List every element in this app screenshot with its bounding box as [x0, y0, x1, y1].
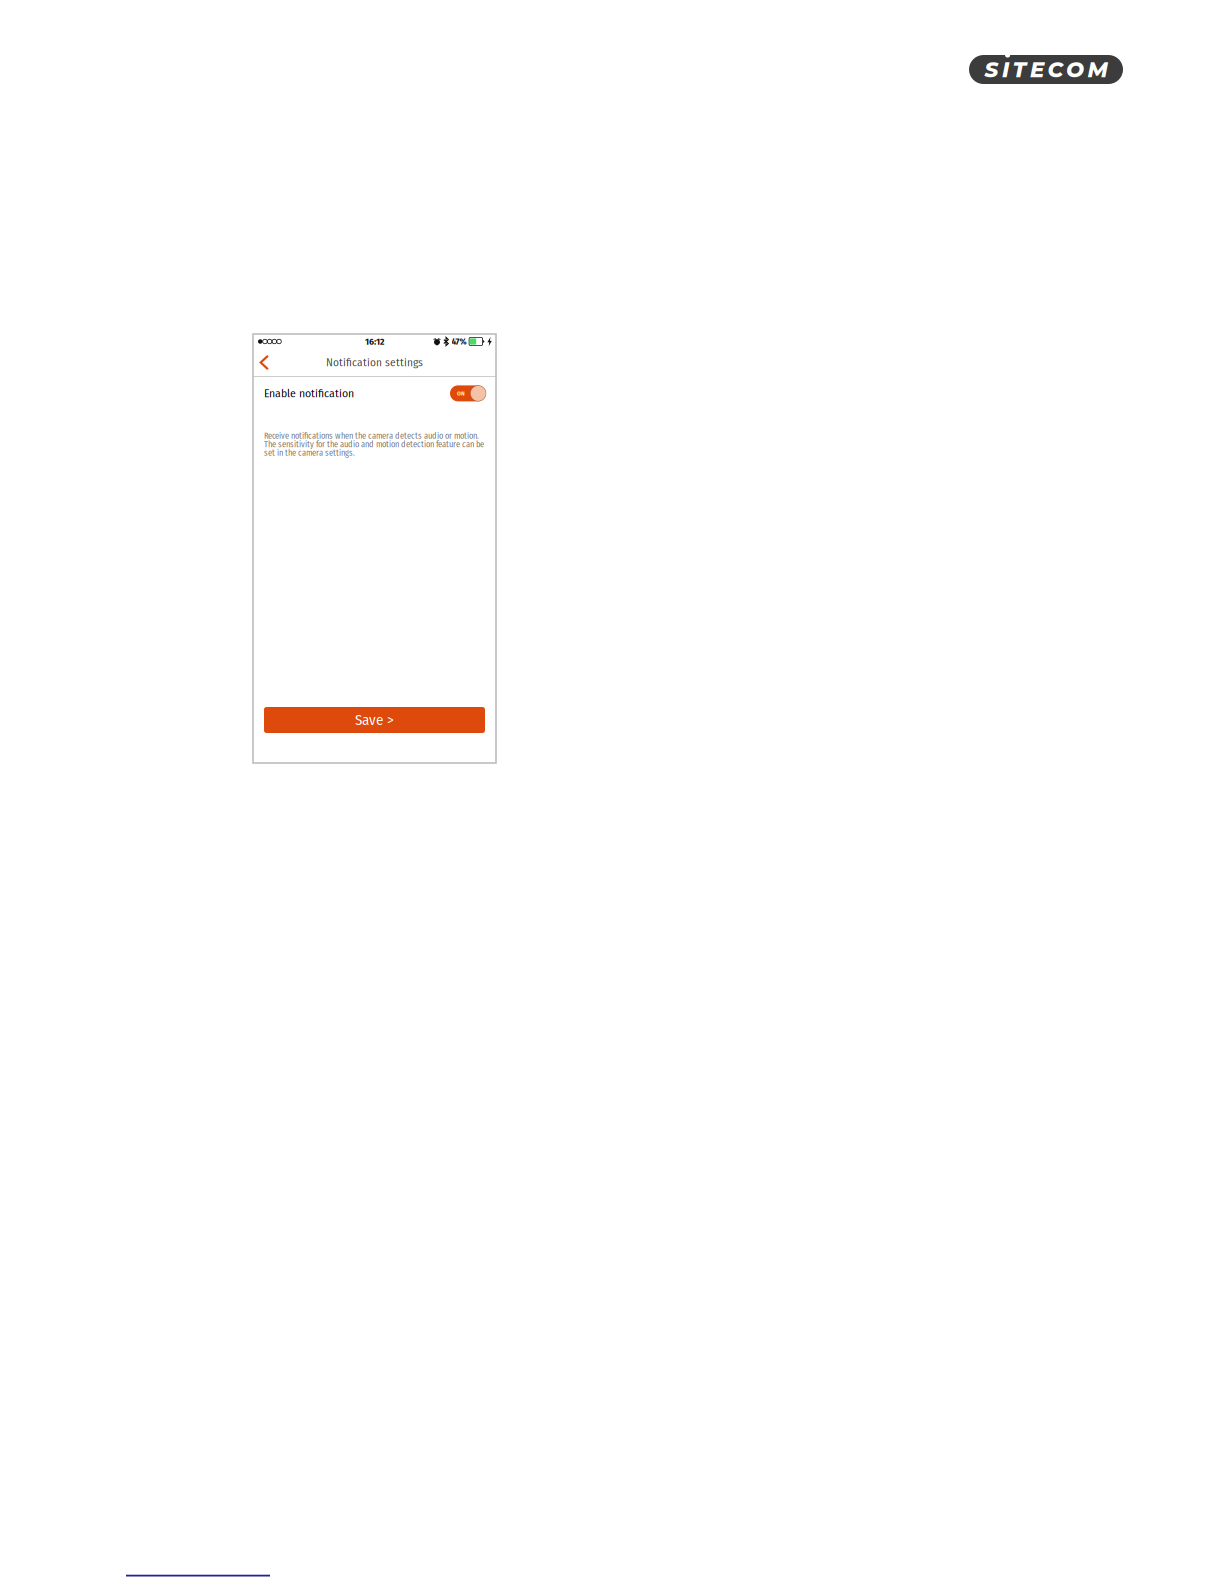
staticText: SITECOM [984, 56, 1107, 82]
staticText: Save > [355, 711, 394, 729]
button[interactable]: Save > [264, 707, 485, 733]
staticText: 16:12 [365, 336, 384, 347]
staticText: 47% [451, 336, 466, 347]
staticText: Receive notifications when the camera de… [264, 431, 484, 458]
button[interactable]: Back [253, 350, 280, 375]
staticText: ON [457, 390, 465, 397]
staticText: Enable notification [264, 386, 354, 400]
staticText: Notification settings [326, 356, 423, 369]
button[interactable]: Enable notification [450, 385, 486, 401]
